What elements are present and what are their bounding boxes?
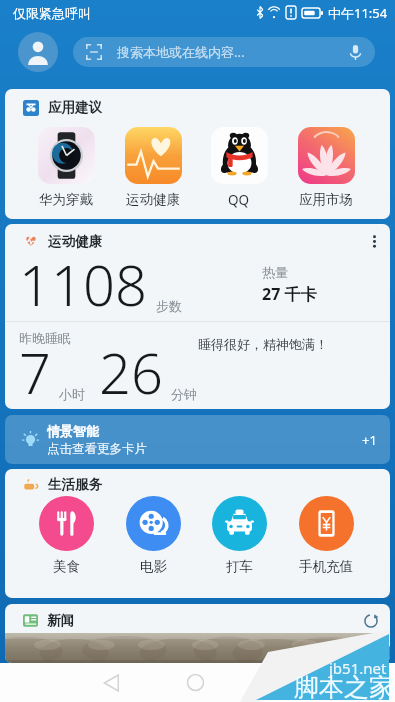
- staticText: 27 千卡: [262, 283, 317, 305]
- staticText: 昨晚睡眠: [19, 330, 71, 346]
- button[interactable]: 情景智能: [5, 415, 390, 464]
- staticText: 仅限紧急呼叫: [13, 5, 91, 21]
- staticText: QQ: [228, 191, 250, 209]
- button[interactable]: Home: [175, 663, 215, 702]
- staticText: +1: [362, 431, 377, 449]
- staticText: jb51.net: [329, 658, 387, 678]
- button[interactable]: Profile: [18, 32, 58, 72]
- staticText: 新闻: [47, 612, 74, 629]
- button[interactable]: 手机充值: [293, 496, 359, 575]
- staticText: 点击查看更多卡片: [47, 441, 147, 457]
- button[interactable]: Refresh: [360, 610, 382, 632]
- staticText: 情景智能: [47, 423, 99, 439]
- staticText: 26: [99, 334, 163, 409]
- staticText: 运动健康: [48, 233, 102, 250]
- staticText: 睡得很好，精神饱满！: [198, 336, 328, 352]
- button[interactable]: 搜索本地或在线内容...: [73, 37, 375, 67]
- staticText: 7: [19, 334, 51, 409]
- staticText: 华为穿戴: [39, 191, 93, 208]
- button[interactable]: 华为穿戴: [33, 127, 99, 208]
- staticText: 手机充值: [299, 558, 353, 575]
- button[interactable]: 运动健康: [120, 127, 186, 208]
- button[interactable]: 应用市场: [293, 127, 359, 208]
- staticText: 分钟: [171, 386, 197, 402]
- staticText: 打车: [226, 558, 253, 575]
- button[interactable]: QQ: [206, 127, 272, 209]
- button[interactable]: 电影: [120, 496, 186, 575]
- staticText: 步数: [156, 298, 182, 314]
- staticText: 电影: [140, 558, 167, 575]
- button[interactable]: 打车: [206, 496, 272, 575]
- button[interactable]: Back: [91, 663, 131, 702]
- staticText: 热量: [262, 264, 288, 280]
- staticText: 运动健康: [126, 191, 180, 208]
- staticText: 应用市场: [299, 191, 353, 208]
- button[interactable]: 美食: [33, 496, 99, 575]
- staticText: 美食: [53, 558, 80, 575]
- staticText: 中午11:54: [328, 4, 388, 22]
- staticText: 应用建议: [48, 99, 102, 116]
- button[interactable]: More options: [363, 230, 385, 252]
- staticText: 小时: [59, 386, 85, 402]
- staticText: 脚本之家: [294, 672, 394, 702]
- staticText: 1108: [19, 246, 147, 322]
- staticText: 搜索本地或在线内容...: [117, 43, 350, 61]
- staticText: 生活服务: [48, 476, 102, 493]
